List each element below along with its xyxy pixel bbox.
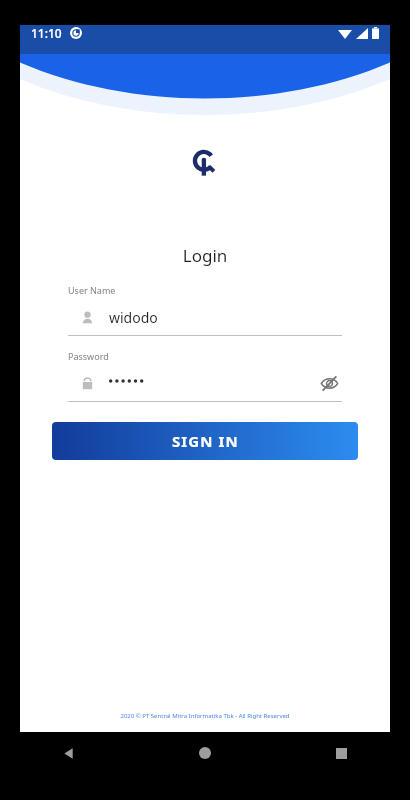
staticText: SIGN IN [172, 431, 239, 451]
button[interactable]: Home [136, 732, 273, 774]
button[interactable]: SIGN IN [52, 422, 358, 460]
button[interactable]: Show password [316, 370, 342, 396]
staticText: 2020 © PT Sentral Mitra Informatika Tbk … [20, 712, 390, 720]
staticText: Password [68, 350, 109, 362]
staticText: widodo [109, 308, 158, 327]
staticText: 11:10 [31, 25, 62, 41]
button[interactable]: Recent apps [273, 732, 410, 774]
button[interactable]: Back [0, 732, 136, 774]
staticText: Login [52, 244, 358, 267]
staticText: User Name [68, 284, 116, 296]
